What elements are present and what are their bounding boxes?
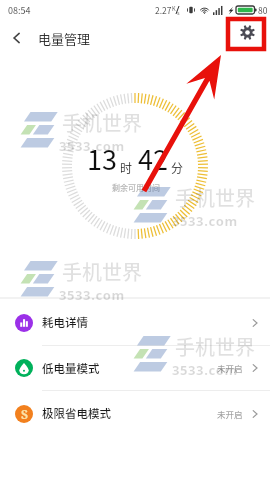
staticText: 3533.com [172,361,238,379]
button[interactable]: 低电量模式 [0,346,270,390]
button[interactable]: Back [0,21,34,55]
staticText: 极限省电模式 [42,405,111,422]
staticText: 时 [120,159,133,176]
staticText: 耗电详情 [42,314,88,331]
staticText: 分 [171,159,184,176]
staticText: 3533.com [59,286,125,304]
staticText: 低电量模式 [42,360,100,377]
staticText: 手机世界 [62,257,142,286]
button[interactable]: 耗电详情 [0,300,270,345]
staticText: 未开启 [217,362,243,374]
staticText: 80 [258,4,268,16]
staticText: 手机世界 [175,183,255,212]
staticText: K [172,5,176,13]
staticText: 42 [138,139,168,178]
staticText: s [177,9,180,17]
staticText: 手机世界 [62,108,142,137]
staticText: 08:54 [8,4,31,17]
staticText: 手机世界 [175,332,255,361]
staticText: 2.27 [155,4,172,16]
staticText: 3533.com [172,212,238,230]
staticText: 3533.com [59,137,125,155]
staticText: S [21,406,28,422]
staticText: 剩余可用时间 [112,182,160,194]
button[interactable]: Settings [232,17,262,47]
staticText: 未开启 [217,408,243,420]
button[interactable]: S [0,391,270,436]
staticText: 13 [87,139,117,178]
staticText: 电量管理 [38,29,91,48]
